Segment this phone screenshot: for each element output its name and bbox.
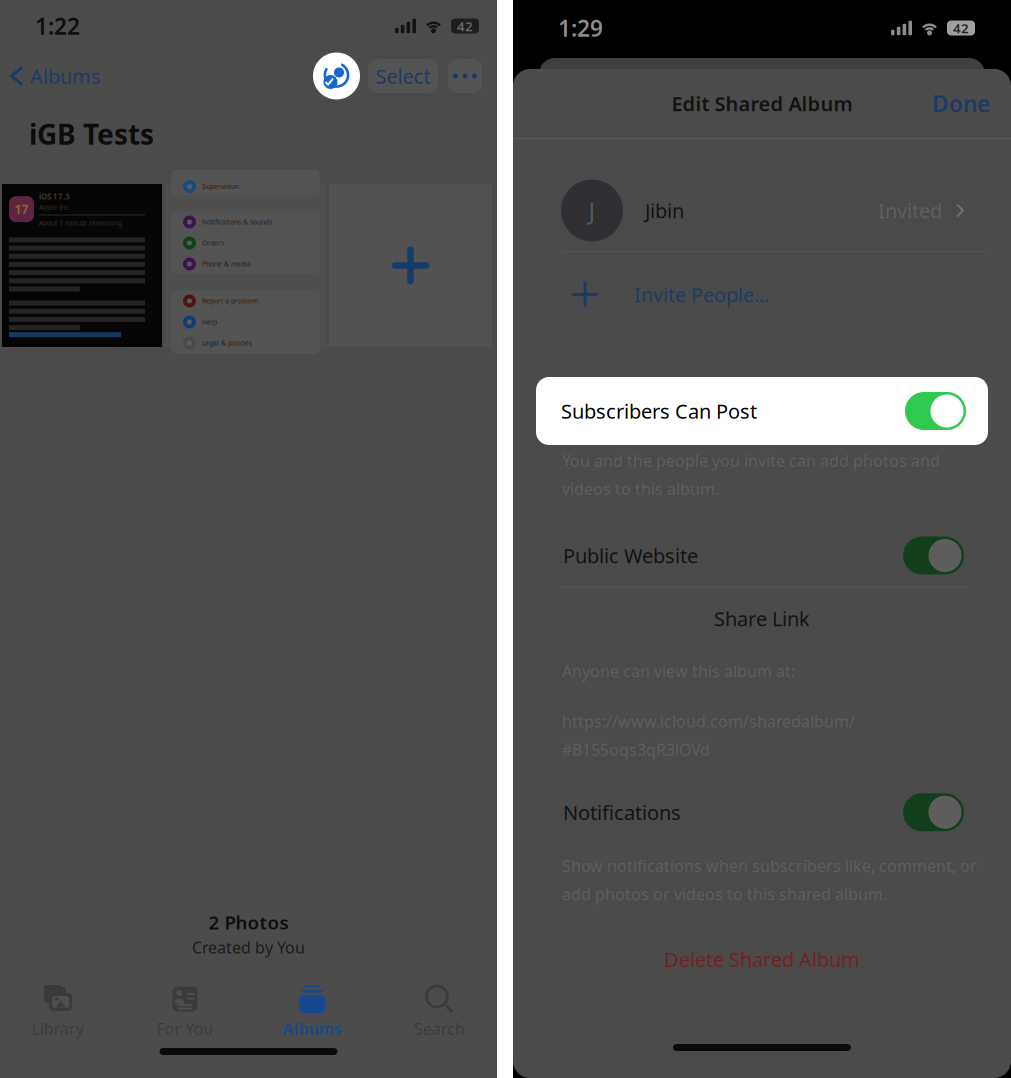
staticText: add photos or videos to this shared albu… xyxy=(562,883,887,905)
staticText: #B155oqs3qR3lOVd xyxy=(562,739,710,760)
staticText: Show notifications when subscribers like… xyxy=(562,855,977,876)
staticText: Notifications xyxy=(563,799,681,826)
staticText: J xyxy=(588,195,595,226)
staticText: 42 xyxy=(953,19,969,37)
staticText: Anyone can view this album at: xyxy=(562,660,795,682)
staticText: Created by You xyxy=(192,937,305,958)
button[interactable]: Invite People... xyxy=(538,252,986,337)
staticText: Report a problem xyxy=(202,297,258,305)
staticText: Search xyxy=(414,1018,465,1039)
staticText: Public Website xyxy=(563,542,698,569)
staticText: Share Link xyxy=(714,605,810,632)
button[interactable]: Subscribers Can Post xyxy=(536,377,988,445)
staticText: 17 xyxy=(14,201,28,217)
button[interactable]: Delete Shared Album xyxy=(538,929,986,990)
staticText: For You xyxy=(156,1018,213,1039)
staticText: Albums xyxy=(283,1018,342,1039)
staticText: https://www.icloud.com/sharedalbum/ xyxy=(562,711,855,732)
staticText: Invited xyxy=(878,197,942,224)
staticText: About 1 minute remaining xyxy=(39,218,122,227)
staticText: You and the people you invite can add ph… xyxy=(562,450,940,471)
button[interactable]: Shared Album xyxy=(313,52,360,99)
staticText: Edit Shared Album xyxy=(671,90,852,117)
staticText: Select xyxy=(375,63,430,89)
staticText: Done xyxy=(932,88,990,118)
staticText: 1:22 xyxy=(35,11,80,41)
staticText: Help xyxy=(202,318,217,326)
button[interactable]: Library xyxy=(0,978,121,1034)
staticText: iOS 17.3 xyxy=(39,191,70,202)
button[interactable]: J xyxy=(538,170,986,251)
staticText: Supervision xyxy=(202,182,239,191)
staticText: Albums xyxy=(30,63,101,89)
staticText: Subscribers Can Post xyxy=(561,398,757,424)
button[interactable]: Albums xyxy=(10,54,101,98)
staticText: videos to this album. xyxy=(562,478,719,499)
staticText: Delete Shared Album xyxy=(664,946,860,973)
staticText: Legal & policies xyxy=(202,339,252,347)
staticText: 2 Photos xyxy=(208,910,288,935)
button[interactable]: Albums xyxy=(248,978,376,1034)
staticText: Invite People... xyxy=(634,281,769,308)
staticText: 42 xyxy=(457,17,473,35)
staticText: Apple Inc. xyxy=(39,203,70,211)
staticText: Phone & media xyxy=(202,260,251,268)
button[interactable]: Select xyxy=(368,59,438,93)
button[interactable]: More options xyxy=(448,59,482,93)
button[interactable]: Search xyxy=(376,978,503,1034)
button[interactable]: For You xyxy=(121,978,248,1034)
button[interactable]: Done xyxy=(932,88,990,118)
staticText: Jibin xyxy=(645,197,684,224)
staticText: iGB Tests xyxy=(29,115,154,153)
staticText: 1:29 xyxy=(558,13,603,43)
staticText: Library xyxy=(32,1018,84,1039)
staticText: Orders xyxy=(202,239,224,247)
button[interactable]: Share Link xyxy=(538,587,986,649)
staticText: Notifications & sounds xyxy=(202,218,272,226)
